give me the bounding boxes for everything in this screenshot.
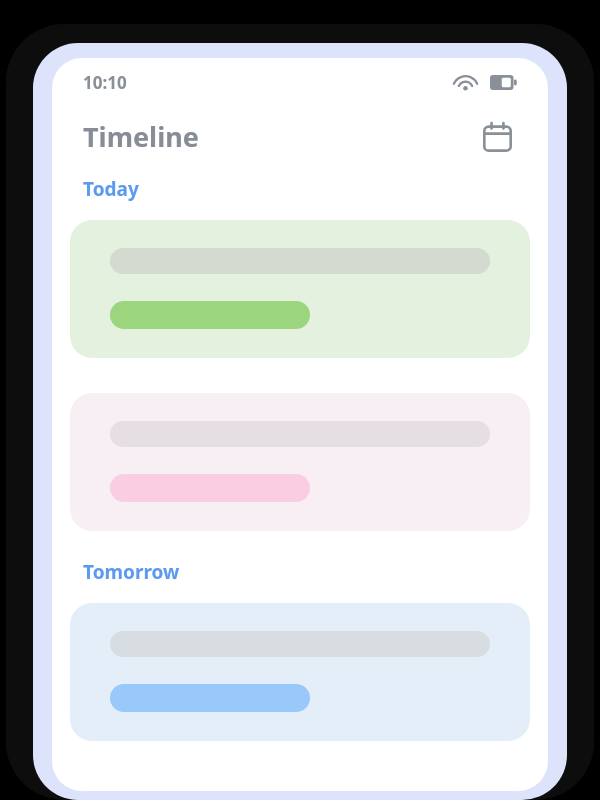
button[interactable]	[70, 220, 530, 358]
staticText: Today	[83, 176, 139, 202]
staticText: 10:10	[83, 71, 127, 94]
button[interactable]	[70, 603, 530, 741]
button[interactable]: Calendar	[477, 116, 517, 156]
staticText: Timeline	[83, 118, 199, 155]
staticText: Tomorrow	[83, 559, 180, 585]
button[interactable]	[70, 393, 530, 531]
